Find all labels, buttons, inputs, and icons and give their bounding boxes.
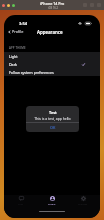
staticText: 3:54 [19, 21, 27, 26]
staticText: Chat [18, 202, 24, 205]
staticText: Follow system preferences [9, 70, 54, 75]
button[interactable]: Dark [4, 60, 100, 68]
staticText: This is a test, app hello [34, 116, 71, 121]
other: Chat [19, 196, 24, 201]
staticText: Test [49, 110, 57, 115]
staticText: iOS 16.2 [48, 6, 58, 10]
staticText: Dark [9, 62, 18, 67]
other: Settings [81, 196, 86, 201]
other: Back [8, 30, 11, 34]
button[interactable]: Back [8, 29, 24, 34]
other: Profile [50, 196, 55, 201]
button[interactable]: Follow system preferences [4, 68, 100, 76]
button[interactable]: Chat [7, 195, 35, 205]
button[interactable]: Settings [69, 195, 97, 205]
staticText: Profile [12, 29, 24, 34]
staticText: Light [9, 54, 18, 59]
staticText: Appearance [37, 29, 63, 35]
staticText: Profile [48, 202, 56, 205]
staticText: APP THEME [9, 46, 26, 50]
staticText: OK [50, 125, 56, 130]
button[interactable]: Profile [38, 195, 66, 205]
staticText: iPhone 14 Pro [40, 1, 65, 6]
button[interactable]: Light [4, 52, 100, 60]
staticText: Settings [78, 202, 88, 205]
button[interactable]: OK [26, 123, 79, 132]
